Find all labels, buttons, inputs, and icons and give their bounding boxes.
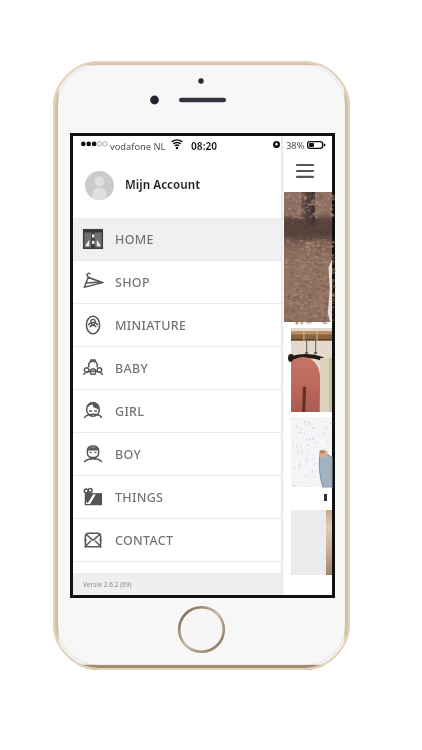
- button[interactable]: Open navigation menu: [296, 164, 314, 178]
- staticText: BABY: [115, 360, 149, 377]
- button[interactable]: CONTACT: [73, 519, 281, 561]
- staticText: THINGS: [115, 489, 164, 506]
- button[interactable]: THINGS: [73, 476, 281, 518]
- staticText: CONTACT: [115, 532, 174, 549]
- button[interactable]: SHOP: [73, 261, 281, 303]
- staticText: SHOP: [115, 274, 150, 291]
- staticText: MINIATURE: [115, 317, 187, 334]
- staticText: 38%: [286, 139, 305, 152]
- button[interactable]: BOY: [73, 433, 281, 475]
- button[interactable]: Mijn Account: [73, 152, 281, 218]
- staticText: Mijn Account: [125, 177, 201, 193]
- staticText: GIRL: [115, 403, 145, 420]
- button[interactable]: MINIATURE: [73, 304, 281, 346]
- staticText: BOY: [115, 446, 142, 463]
- staticText: 08:20: [191, 139, 218, 153]
- button[interactable]: BABY: [73, 347, 281, 389]
- button[interactable]: HOME: [73, 218, 281, 260]
- button[interactable]: GIRL: [73, 390, 281, 432]
- staticText: HOME: [115, 231, 154, 248]
- staticText: Versie 2.6.2 (69): [83, 580, 132, 589]
- staticText: vodafone NL: [110, 140, 166, 153]
